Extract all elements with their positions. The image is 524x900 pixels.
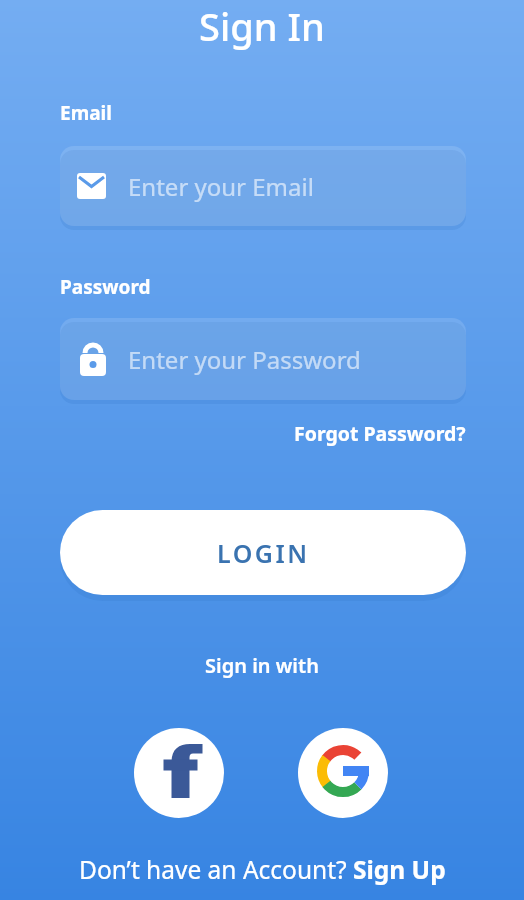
button[interactable]: LOGIN xyxy=(60,510,466,595)
staticText: Don’t have an Account? Sign Up xyxy=(79,853,446,886)
button[interactable]: Forgot Password? xyxy=(294,420,466,447)
staticText: Enter your Password xyxy=(128,343,361,376)
button[interactable] xyxy=(134,728,224,818)
button[interactable]: Don’t have an Account? Sign Up xyxy=(79,853,446,886)
staticText: Forgot Password? xyxy=(294,420,466,447)
button[interactable]: Enter your Password xyxy=(60,318,466,400)
staticText: LOGIN xyxy=(217,536,310,570)
staticText: Email xyxy=(60,100,112,126)
staticText: Sign In xyxy=(199,0,325,52)
staticText: Enter your Email xyxy=(128,170,314,203)
staticText: Sign in with xyxy=(205,652,319,679)
button[interactable] xyxy=(298,728,388,818)
button[interactable]: Enter your Email xyxy=(60,146,466,226)
staticText: Password xyxy=(60,274,151,300)
